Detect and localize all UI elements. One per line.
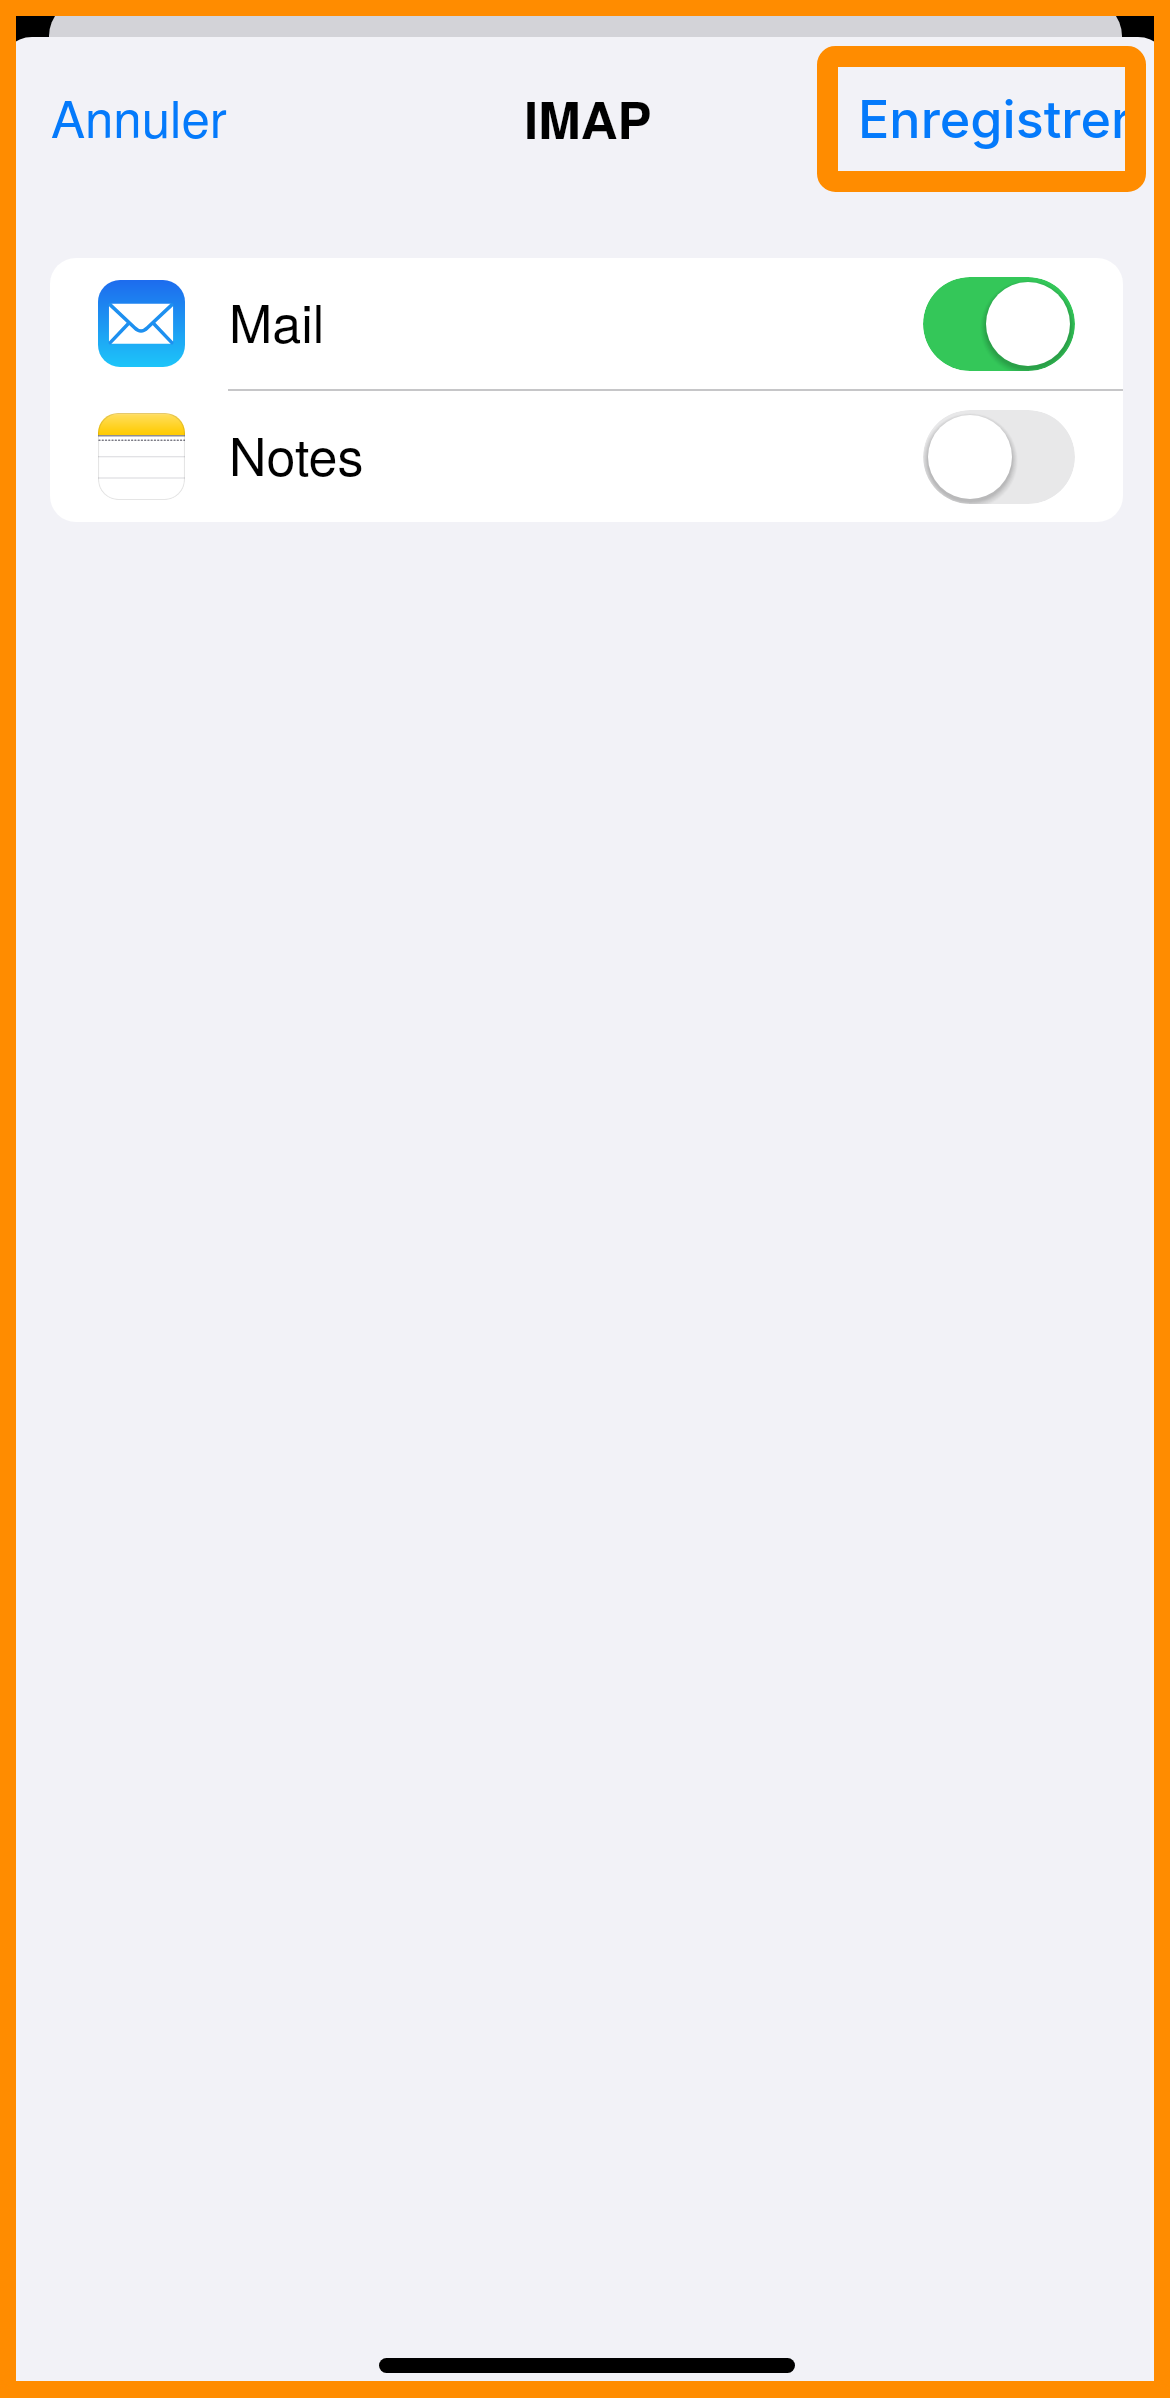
button[interactable]: Annuler [19,55,259,176]
button[interactable]: Notes [50,391,1123,522]
staticText: Notes [229,416,364,490]
button[interactable]: Mail [50,258,1123,389]
staticText: IMAP [524,82,652,155]
button[interactable]: Notes désactivé [923,410,1075,504]
button[interactable]: Enregistrer [826,64,1164,175]
staticText: Annuler [51,79,227,152]
staticText: Enregistrer [858,88,1132,151]
staticText: Mail [229,283,325,357]
button[interactable]: Mail activé [923,277,1075,371]
